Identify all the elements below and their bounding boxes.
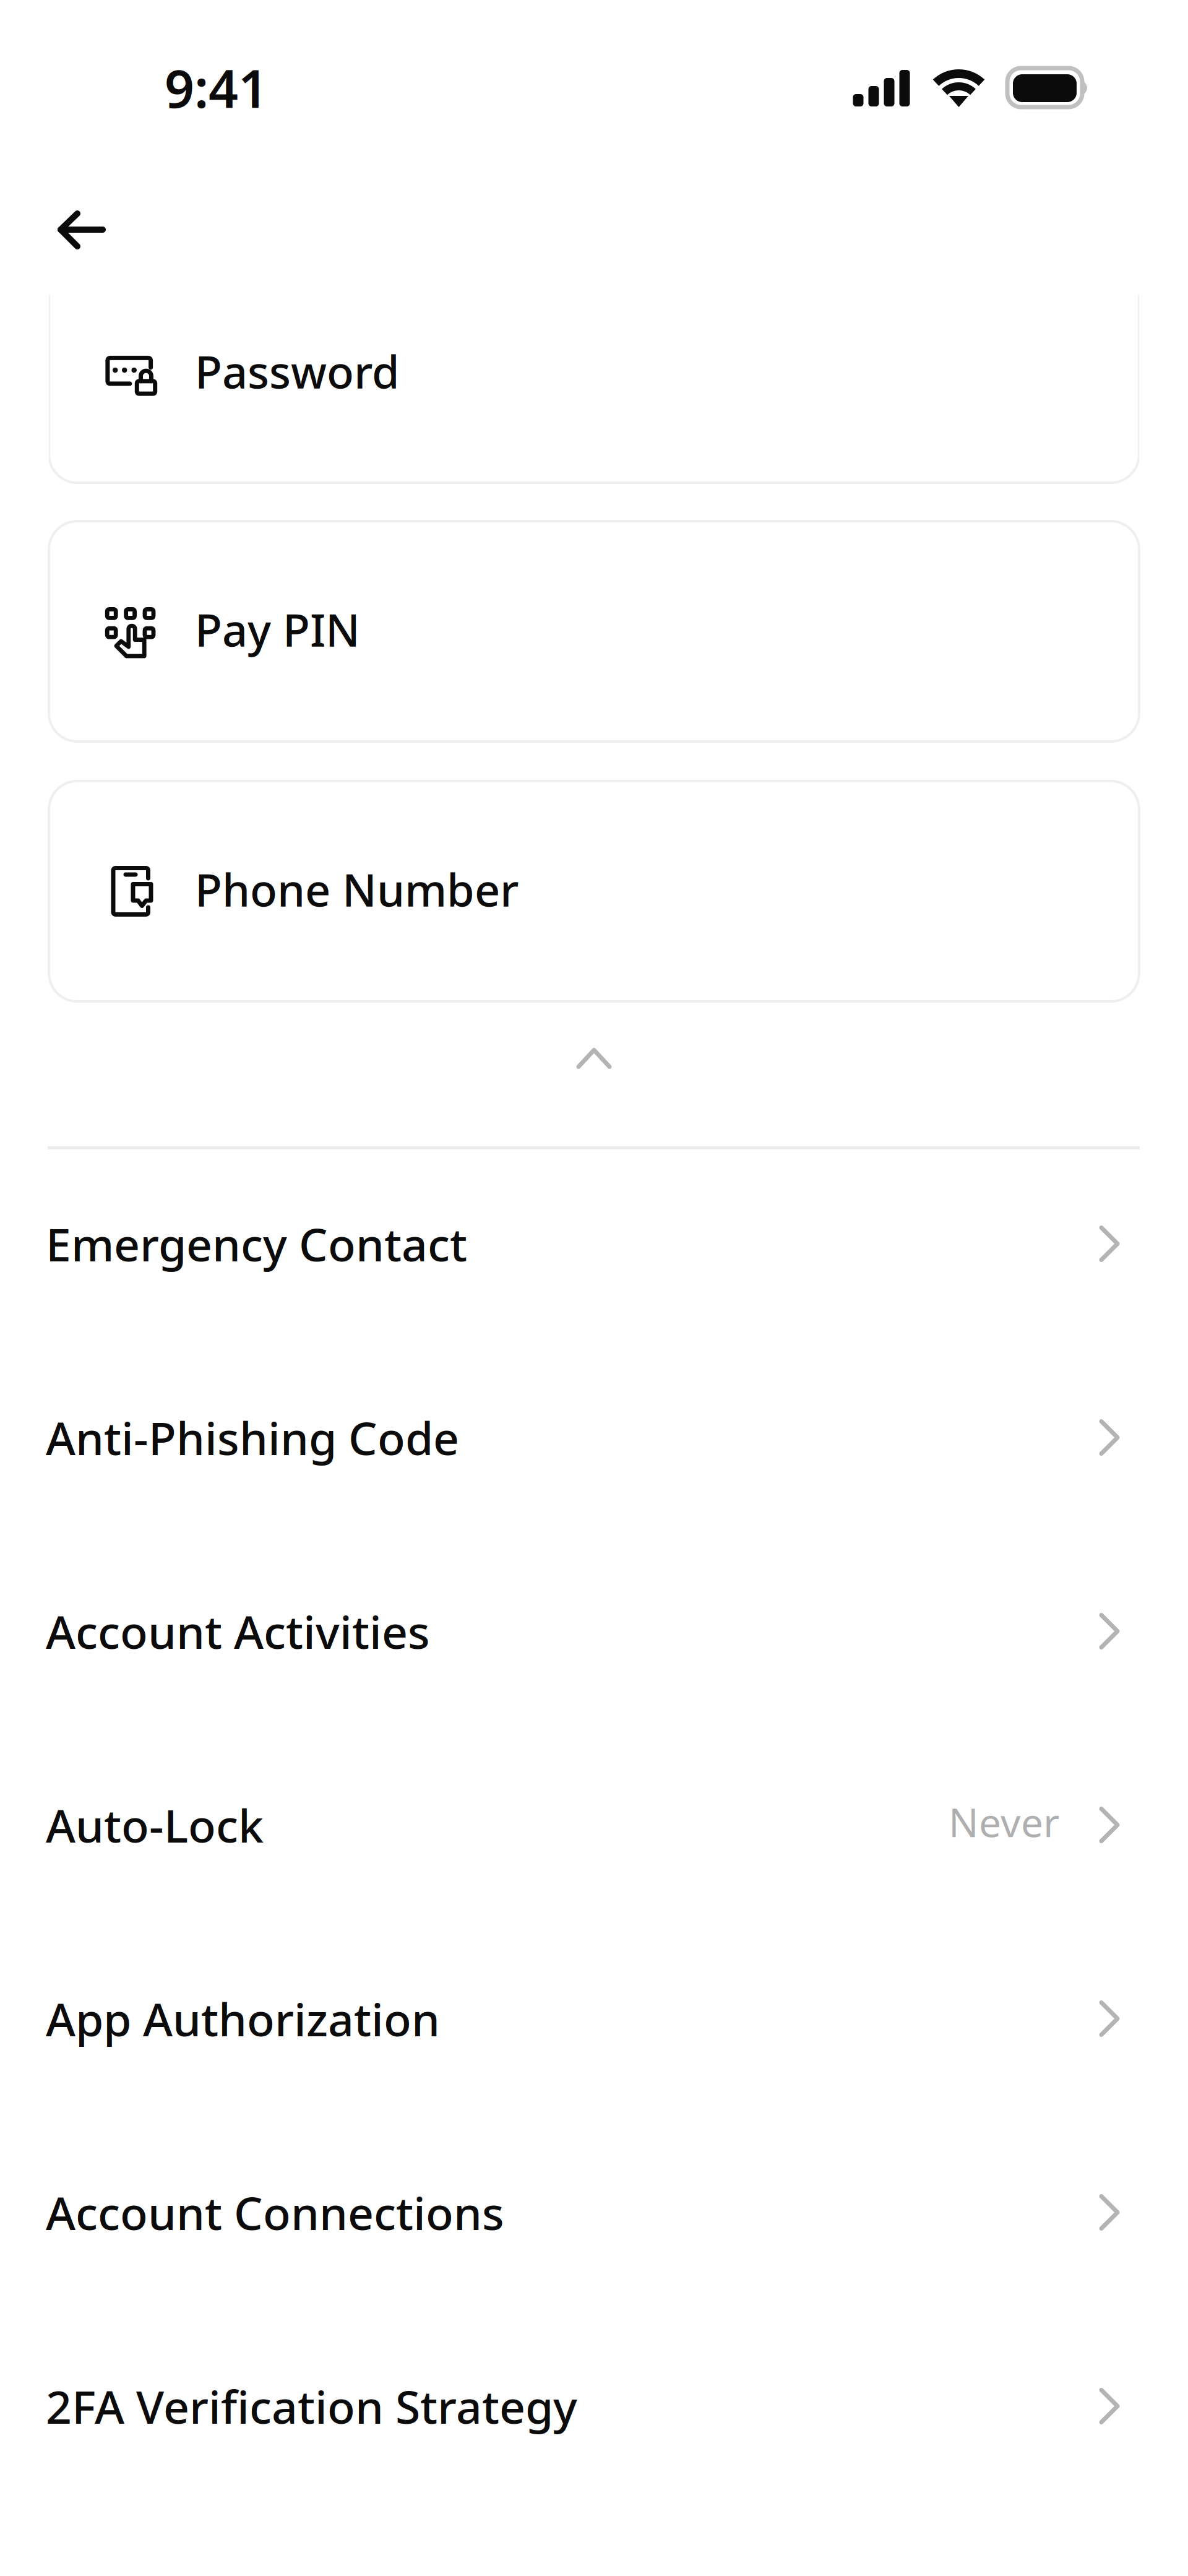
staticText: 2FA Verification Strategy (46, 2376, 577, 2436)
button[interactable]: Pay PIN (49, 521, 1139, 741)
button[interactable]: Back (26, 165, 137, 258)
staticText: Pay PIN (195, 600, 360, 659)
button[interactable]: Account Activities (0, 1534, 1188, 1728)
button[interactable]: Account Connections (0, 2116, 1188, 2309)
staticText: Never (949, 1796, 1059, 1848)
staticText: Emergency Contact (46, 1214, 467, 1274)
staticText: Auto-Lock (46, 1795, 264, 1855)
staticText: App Authorization (46, 1989, 440, 2049)
staticText: Account Activities (46, 1601, 430, 1661)
staticText: 9:41 (165, 53, 268, 122)
button[interactable]: Emergency Contact (0, 1147, 1188, 1341)
button[interactable]: Phone Number (49, 781, 1139, 1001)
button[interactable]: 2FA Verification Strategy (0, 2309, 1188, 2503)
button[interactable]: Password (49, 295, 1139, 484)
staticText: Anti-Phishing Code (46, 1407, 459, 1468)
staticText: Account Connections (46, 2182, 504, 2243)
button[interactable]: Collapse (520, 1012, 668, 1105)
button[interactable]: App Authorization (0, 1922, 1188, 2116)
staticText: Password (195, 342, 400, 401)
button[interactable]: Auto-Lock (0, 1728, 1188, 1922)
button[interactable]: Anti-Phishing Code (0, 1341, 1188, 1534)
staticText: Phone Number (195, 860, 519, 919)
